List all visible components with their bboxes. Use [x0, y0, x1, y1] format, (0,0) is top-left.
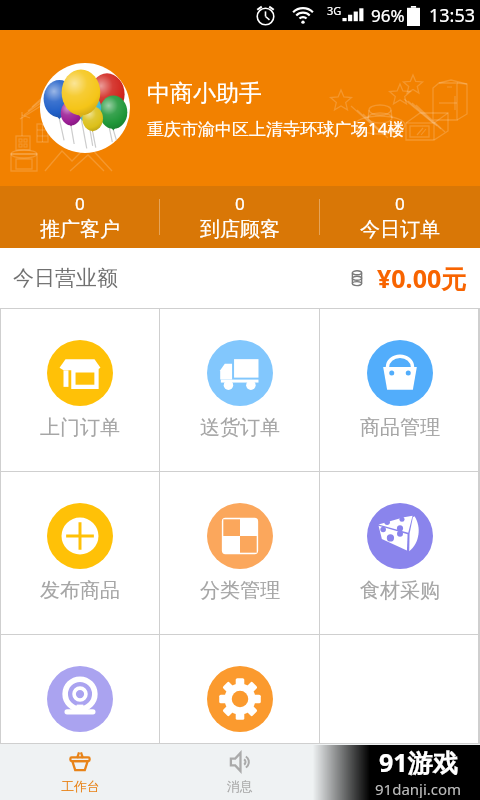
button[interactable]: 工作台 — [0, 744, 160, 800]
button[interactable]: 0 — [320, 186, 480, 248]
button[interactable]: 商品管理 — [320, 309, 480, 471]
staticText: 0 — [235, 192, 245, 215]
button[interactable]: 设置 — [160, 635, 320, 797]
staticText: ¥0.00元 — [377, 261, 467, 295]
button[interactable]: 摄像头 — [0, 635, 160, 797]
staticText: 食材采购 — [360, 578, 440, 603]
staticText: 0 — [75, 192, 85, 215]
button[interactable]: 消息 — [160, 744, 320, 800]
staticText: 96% — [371, 4, 405, 27]
staticText: 送货订单 — [200, 415, 280, 440]
staticText: 分类管理 — [200, 578, 280, 603]
staticText: 工作台 — [61, 778, 100, 794]
button[interactable]: 分类管理 — [160, 472, 320, 634]
staticText: 商品管理 — [360, 415, 440, 440]
staticText: 到店顾客 — [200, 217, 280, 242]
button[interactable]: 发布商品 — [0, 472, 160, 634]
staticText: 3G — [327, 3, 342, 18]
staticText: 今日营业额 — [13, 265, 118, 291]
button[interactable]: 0 — [160, 186, 320, 248]
button[interactable]: 食材采购 — [320, 472, 480, 634]
button[interactable]: 上门订单 — [0, 309, 160, 471]
staticText: 设置 — [220, 741, 260, 766]
staticText: 0 — [395, 192, 405, 215]
staticText: 91游戏 — [379, 745, 458, 779]
staticText: 上门订单 — [40, 415, 120, 440]
staticText: 中商小助手 — [147, 79, 262, 108]
staticText: 推广客户 — [40, 217, 120, 242]
button[interactable]: 送货订单 — [160, 309, 320, 471]
button[interactable]: 0 — [0, 186, 160, 248]
staticText: 91danji.com — [375, 779, 462, 798]
staticText: 13:53 — [429, 3, 476, 28]
staticText: 今日订单 — [360, 217, 440, 242]
staticText: 摄像头 — [50, 741, 110, 766]
staticText: 消息 — [227, 778, 253, 794]
staticText: 重庆市渝中区上清寺环球广场14楼 — [147, 117, 405, 140]
staticText: 发布商品 — [40, 578, 120, 603]
